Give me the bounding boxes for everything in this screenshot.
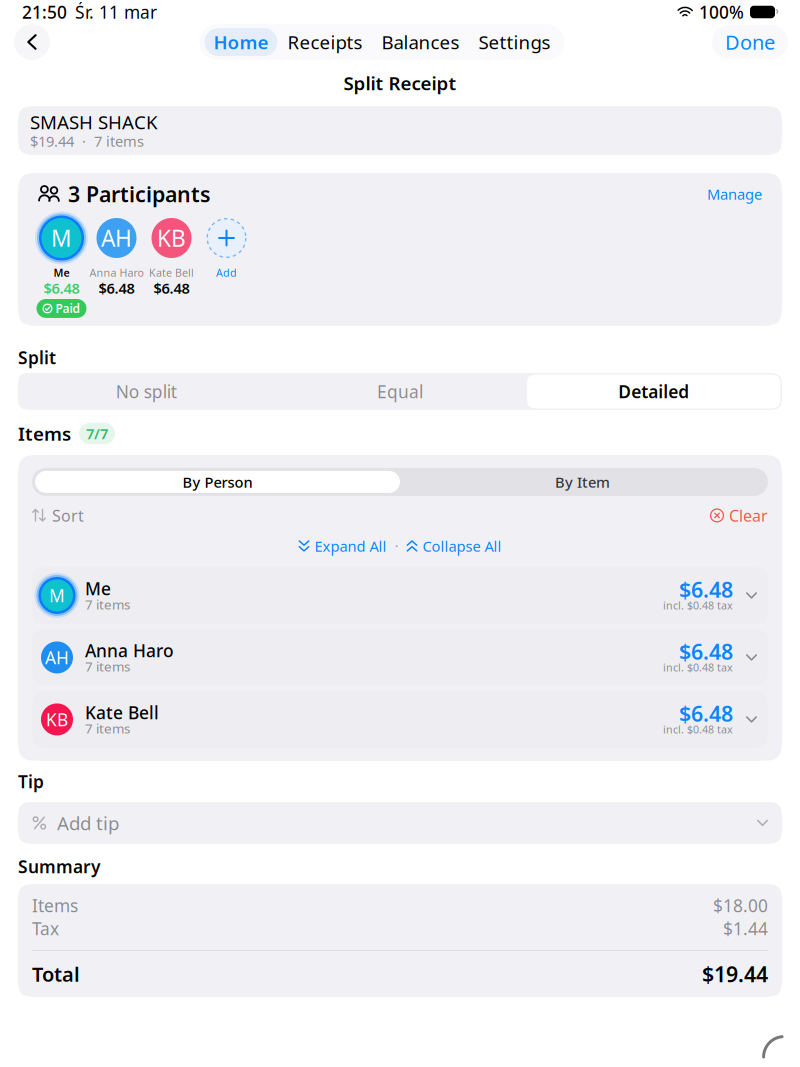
staticText: Śr. 11 mar: [75, 0, 157, 23]
button[interactable]: Sort: [32, 507, 84, 524]
button[interactable]: Receipts: [278, 28, 371, 56]
staticText: By Person: [182, 472, 252, 492]
staticText: KB: [46, 708, 68, 731]
staticText: Clear: [729, 505, 768, 526]
staticText: 21:50: [22, 0, 67, 23]
button[interactable]: AH: [32, 629, 768, 686]
staticText: 3 Participants: [68, 180, 211, 208]
staticText: $6.48: [679, 699, 733, 728]
staticText: 100%: [699, 0, 744, 23]
staticText: $6.48: [43, 278, 79, 298]
staticText: Detailed: [618, 380, 689, 403]
staticText: $6.48: [679, 637, 733, 666]
staticText: Split Receipt: [343, 71, 456, 95]
staticText: $19.44 · 7 items: [30, 131, 144, 151]
staticText: Anna Haro: [89, 265, 143, 280]
staticText: $6.48: [153, 278, 189, 298]
staticText: 7/7: [86, 424, 108, 443]
staticText: AH: [101, 223, 132, 253]
button[interactable]: Done: [712, 25, 788, 59]
staticText: Receipts: [287, 30, 362, 54]
staticText: Kate Bell: [149, 265, 194, 280]
staticText: incl. $0.48 tax: [663, 722, 733, 737]
staticText: incl. $0.48 tax: [663, 660, 733, 675]
staticText: By Item: [555, 472, 610, 492]
button[interactable]: KB: [32, 691, 768, 748]
button[interactable]: By Item: [400, 471, 765, 493]
button[interactable]: Add: [199, 216, 254, 279]
staticText: Expand All: [314, 536, 386, 556]
button[interactable]: Collapse All: [406, 538, 501, 554]
staticText: Total: [32, 961, 80, 987]
staticText: AH: [45, 646, 69, 669]
staticText: Collapse All: [422, 536, 501, 556]
button[interactable]: Settings: [469, 28, 559, 56]
staticText: Sort: [52, 505, 84, 526]
staticText: Paid: [55, 300, 80, 316]
staticText: $6.48: [98, 278, 134, 298]
staticText: Anna Haro: [85, 639, 174, 662]
staticText: Done: [725, 29, 775, 55]
button[interactable]: Add tip: [18, 802, 782, 844]
button[interactable]: By Person: [35, 471, 400, 493]
button[interactable]: Balances: [372, 28, 468, 56]
staticText: 7 items: [85, 720, 130, 737]
staticText: Home: [213, 30, 268, 54]
staticText: 7 items: [85, 596, 130, 613]
button[interactable]: Detailed: [527, 374, 780, 408]
staticText: Items: [32, 894, 78, 917]
staticText: Tip: [18, 770, 44, 793]
staticText: Manage: [707, 184, 762, 204]
staticText: Add: [216, 265, 237, 280]
button[interactable]: Home: [204, 28, 277, 56]
staticText: $1.44: [723, 917, 768, 940]
button[interactable]: KB: [144, 216, 199, 295]
staticText: Tax: [32, 917, 59, 940]
staticText: Items: [18, 421, 71, 446]
button[interactable]: No split: [19, 374, 273, 408]
staticText: Settings: [478, 30, 550, 54]
staticText: Kate Bell: [85, 701, 159, 724]
staticText: $18.00: [713, 894, 768, 917]
staticText: M: [51, 223, 72, 253]
button[interactable]: Expand All: [298, 538, 386, 554]
staticText: Balances: [381, 30, 459, 54]
staticText: KB: [157, 223, 186, 253]
staticText: Add tip: [57, 810, 119, 835]
button[interactable]: Manage: [707, 186, 762, 202]
button[interactable]: Back: [12, 22, 52, 62]
staticText: No split: [116, 380, 177, 403]
button[interactable]: Clear: [710, 507, 768, 524]
staticText: incl. $0.48 tax: [663, 598, 733, 613]
staticText: Equal: [377, 380, 423, 403]
staticText: 7 items: [85, 658, 130, 675]
button[interactable]: M: [32, 567, 768, 624]
staticText: Summary: [18, 855, 100, 878]
button[interactable]: AH: [89, 216, 144, 295]
button[interactable]: M: [34, 216, 89, 318]
button[interactable]: Equal: [273, 374, 527, 408]
staticText: $6.48: [679, 575, 733, 604]
staticText: $19.44: [702, 960, 768, 988]
staticText: M: [49, 584, 65, 607]
staticText: Split: [18, 346, 56, 369]
staticText: Me: [53, 265, 69, 280]
staticText: SMASH SHACK: [30, 110, 158, 134]
staticText: ·: [394, 535, 398, 556]
staticText: Me: [85, 577, 111, 600]
